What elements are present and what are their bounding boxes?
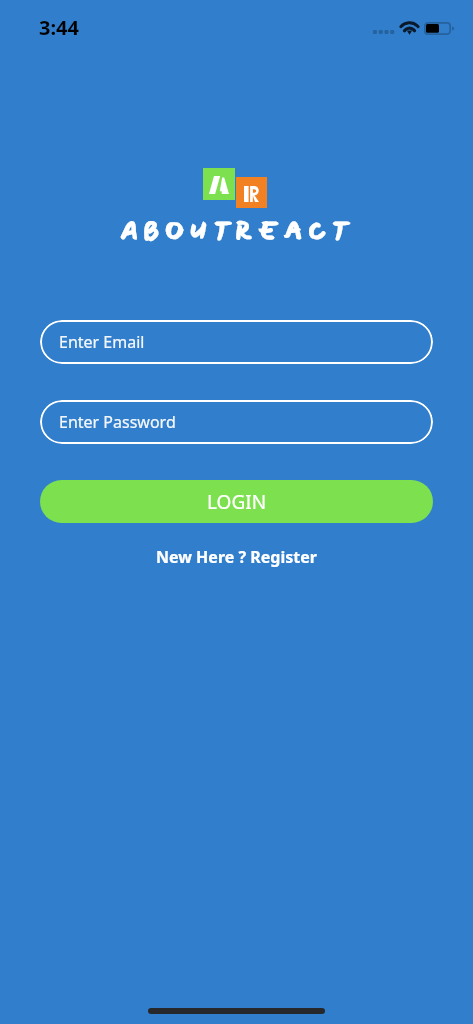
other: Wi-Fi bbox=[400, 21, 419, 35]
other: Cellular signal bbox=[373, 30, 395, 34]
button[interactable]: Enter Email bbox=[40, 320, 433, 364]
button[interactable]: LOGIN bbox=[40, 480, 433, 523]
staticText: 3:44 bbox=[39, 14, 79, 41]
staticText: Enter Password bbox=[59, 411, 176, 433]
staticText: ABOUTREACT bbox=[120, 213, 354, 250]
other: AboutReact logo bbox=[203, 168, 267, 208]
staticText: Enter Email bbox=[59, 331, 145, 353]
other: Battery bbox=[424, 22, 455, 35]
button[interactable]: New Here ? Register bbox=[144, 541, 329, 573]
button[interactable]: Enter Password bbox=[40, 400, 433, 444]
staticText: LOGIN bbox=[207, 489, 267, 515]
staticText: New Here ? Register bbox=[156, 546, 317, 568]
